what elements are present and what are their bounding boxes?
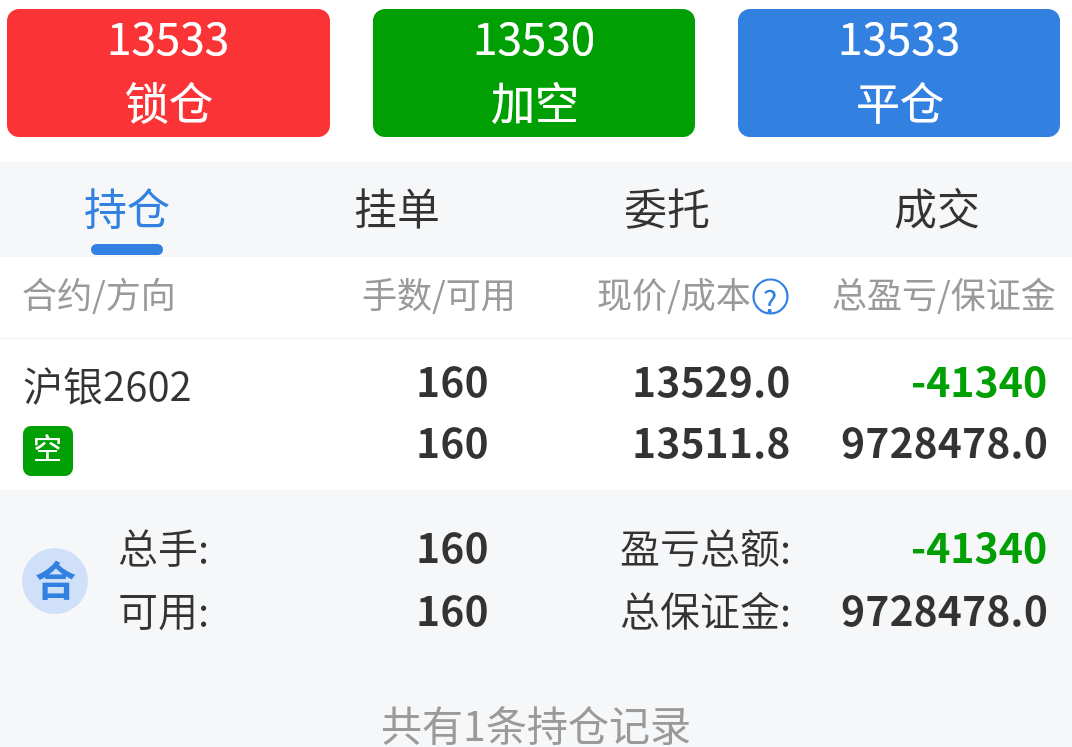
button[interactable]: Help: price and cost explanation	[752, 278, 789, 315]
staticText: 现价/成本	[597, 267, 751, 318]
staticText: 160	[416, 349, 489, 408]
button[interactable]: 13533	[738, 9, 1060, 137]
staticText: 9728478.0	[841, 410, 1048, 469]
staticText: 共有1条持仓记录	[0, 693, 1072, 747]
staticText: 13511.8	[632, 410, 791, 469]
button[interactable]: 成交	[802, 162, 1072, 257]
staticText: -41340	[911, 349, 1048, 408]
staticText: 加空	[491, 69, 579, 132]
staticText: 总手:	[118, 517, 210, 575]
staticText: 持仓	[84, 175, 170, 237]
button[interactable]: 13533	[7, 9, 330, 137]
staticText: 13530	[473, 9, 596, 68]
staticText: 空	[33, 426, 63, 468]
staticText: -41340	[911, 515, 1048, 574]
staticText: 沪银2602	[23, 355, 192, 413]
staticText: 总保证金:	[620, 580, 792, 638]
staticText: 160	[416, 515, 489, 574]
staticText: 13533	[107, 9, 230, 68]
staticText: 盈亏总额:	[620, 517, 792, 575]
staticText: 合	[35, 548, 76, 607]
button[interactable]: 委托	[532, 162, 802, 257]
staticText: 总盈亏/保证金	[832, 267, 1056, 318]
staticText: 委托	[624, 175, 710, 237]
staticText: 平仓	[856, 69, 944, 132]
button[interactable]: 沪银2602	[0, 339, 1072, 490]
staticText: 锁仓	[125, 69, 213, 132]
staticText: 13533	[838, 9, 961, 68]
button[interactable]: 13530	[373, 9, 695, 137]
staticText: 合约/方向	[22, 267, 176, 318]
button[interactable]: 持仓	[0, 162, 262, 257]
staticText: 挂单	[354, 175, 440, 237]
staticText: 成交	[894, 175, 980, 237]
staticText: 手数/可用	[362, 267, 516, 318]
staticText: 160	[416, 578, 489, 637]
button[interactable]: 挂单	[262, 162, 532, 257]
staticText: 13529.0	[632, 349, 791, 408]
staticText: 160	[416, 410, 489, 469]
staticText: 可用:	[118, 580, 210, 638]
staticText: 9728478.0	[841, 578, 1048, 637]
staticText: ?	[763, 278, 778, 315]
